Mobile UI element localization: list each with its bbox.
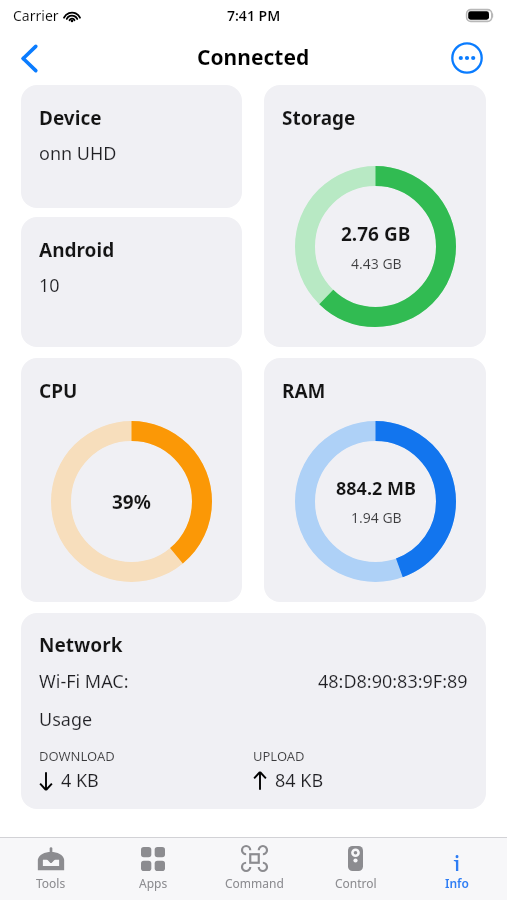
button[interactable]: CPU — [21, 358, 242, 602]
staticText: Usage — [39, 707, 93, 732]
staticText: Carrier — [13, 6, 59, 25]
staticText: Command — [225, 875, 284, 891]
button[interactable]: Back — [6, 35, 52, 81]
staticText: UPLOAD — [253, 747, 305, 765]
staticText: Device — [39, 105, 102, 131]
staticText: Tools — [36, 875, 66, 891]
staticText: i — [453, 847, 462, 871]
staticText: 884.2 MB — [336, 476, 416, 501]
button[interactable]: Storage — [264, 85, 486, 347]
staticText: 84 KB — [275, 768, 324, 793]
button[interactable]: More options — [449, 40, 485, 76]
staticText: 39% — [112, 489, 151, 515]
staticText: Storage — [282, 105, 356, 131]
button[interactable]: Control — [305, 838, 406, 900]
button[interactable]: Network — [21, 613, 486, 809]
button[interactable]: Android — [21, 217, 242, 347]
staticText: 2.76 GB — [341, 221, 411, 247]
staticText: DOWNLOAD — [39, 747, 115, 765]
staticText: 4.43 GB — [351, 254, 402, 273]
staticText: RAM — [282, 378, 326, 404]
staticText: Wi-Fi MAC: — [39, 669, 129, 694]
button[interactable]: i — [406, 838, 507, 900]
staticText: 7:41 PM — [227, 6, 281, 25]
staticText: Connected — [197, 43, 310, 72]
staticText: Android — [39, 237, 115, 263]
staticText: Info — [445, 875, 469, 891]
button[interactable]: Command — [204, 838, 305, 900]
staticText: Apps — [139, 875, 168, 891]
button[interactable]: RAM — [264, 358, 486, 602]
button[interactable]: Tools — [0, 838, 102, 900]
staticText: 48:D8:90:83:9F:89 — [318, 669, 468, 694]
staticText: Network — [39, 632, 123, 658]
staticText: CPU — [39, 378, 78, 404]
staticText: 1.94 GB — [351, 508, 402, 527]
staticText: 10 — [39, 273, 60, 298]
staticText: Control — [335, 875, 377, 891]
button[interactable]: Device — [21, 85, 242, 208]
button[interactable]: Apps — [102, 838, 204, 900]
staticText: 4 KB — [61, 768, 99, 793]
staticText: onn UHD — [39, 141, 117, 166]
